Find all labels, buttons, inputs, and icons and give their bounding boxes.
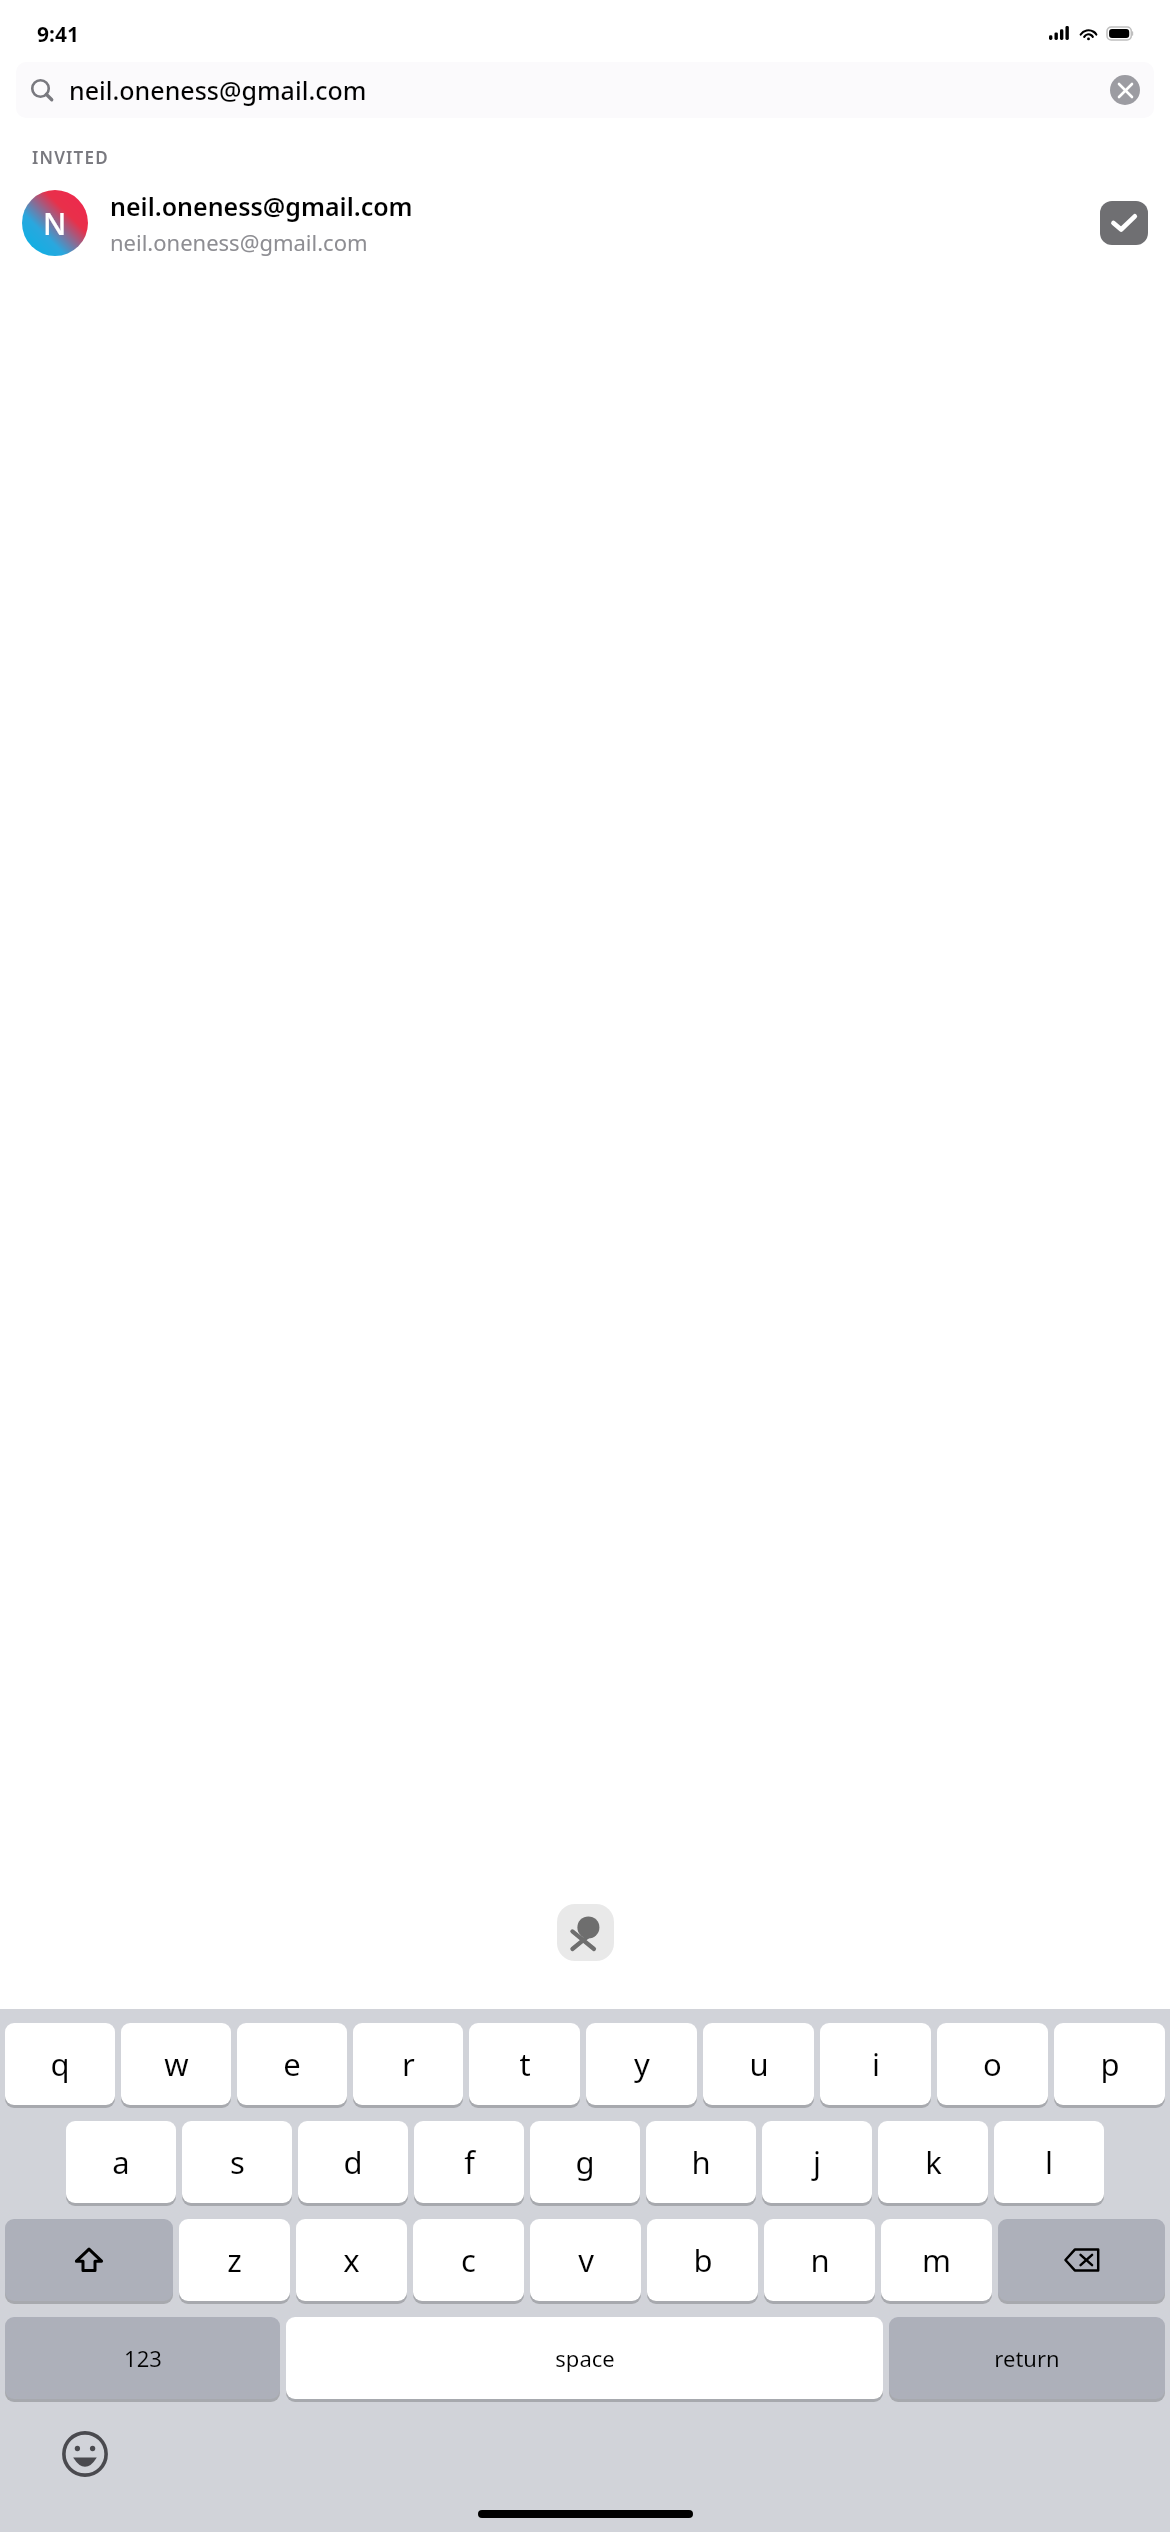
- button[interactable]: x: [296, 2219, 407, 2301]
- button[interactable]: space: [286, 2317, 883, 2399]
- button[interactable]: neil.oneness@gmail.com: [16, 62, 1154, 118]
- button[interactable]: a: [66, 2121, 176, 2203]
- staticText: j: [813, 2141, 821, 2183]
- button[interactable]: d: [298, 2121, 408, 2203]
- button[interactable]: 123: [5, 2317, 280, 2399]
- button[interactable]: z: [179, 2219, 290, 2301]
- staticText: m: [922, 2239, 951, 2281]
- staticText: n: [810, 2239, 830, 2281]
- button[interactable]: Clear text: [1110, 75, 1140, 105]
- staticText: y: [634, 2043, 650, 2085]
- staticText: v: [578, 2239, 594, 2281]
- staticText: g: [575, 2141, 595, 2183]
- staticText: x: [343, 2239, 360, 2281]
- button[interactable]: Backspace: [998, 2219, 1165, 2301]
- button[interactable]: r: [353, 2023, 463, 2105]
- staticText: INVITED: [32, 146, 109, 169]
- button[interactable]: p: [1054, 2023, 1165, 2105]
- staticText: 123: [124, 2343, 162, 2373]
- button[interactable]: f: [414, 2121, 524, 2203]
- staticText: c: [461, 2239, 476, 2281]
- button[interactable]: m: [881, 2219, 992, 2301]
- button[interactable]: v: [530, 2219, 641, 2301]
- staticText: N: [43, 203, 67, 244]
- button[interactable]: t: [469, 2023, 580, 2105]
- staticText: w: [164, 2043, 189, 2085]
- staticText: return: [994, 2343, 1060, 2373]
- button[interactable]: o: [937, 2023, 1048, 2105]
- button[interactable]: i: [820, 2023, 931, 2105]
- button[interactable]: w: [121, 2023, 231, 2105]
- staticText: l: [1045, 2141, 1053, 2183]
- button[interactable]: l: [994, 2121, 1104, 2203]
- staticText: h: [691, 2141, 711, 2183]
- button[interactable]: Selected: [1100, 201, 1148, 245]
- button[interactable]: n: [764, 2219, 875, 2301]
- staticText: p: [1100, 2043, 1120, 2085]
- staticText: neil.oneness@gmail.com: [110, 227, 368, 257]
- button[interactable]: y: [586, 2023, 697, 2105]
- staticText: r: [402, 2043, 415, 2085]
- staticText: 9:41: [37, 20, 79, 49]
- staticText: neil.oneness@gmail.com: [110, 189, 413, 223]
- button[interactable]: b: [647, 2219, 758, 2301]
- staticText: f: [464, 2141, 475, 2183]
- button[interactable]: Emoji keyboard: [58, 2427, 112, 2481]
- button[interactable]: k: [878, 2121, 988, 2203]
- button[interactable]: u: [703, 2023, 814, 2105]
- staticText: d: [343, 2141, 363, 2183]
- button[interactable]: e: [237, 2023, 347, 2105]
- staticText: a: [112, 2141, 130, 2183]
- staticText: q: [50, 2043, 70, 2085]
- staticText: t: [519, 2043, 531, 2085]
- staticText: u: [749, 2043, 769, 2085]
- staticText: s: [230, 2141, 245, 2183]
- button[interactable]: N: [0, 179, 1170, 267]
- button[interactable]: Shift: [5, 2219, 173, 2301]
- staticText: i: [872, 2043, 880, 2085]
- button[interactable]: return: [889, 2317, 1165, 2399]
- staticText: neil.oneness@gmail.com: [69, 73, 1110, 107]
- staticText: o: [983, 2043, 1002, 2085]
- staticText: e: [283, 2043, 301, 2085]
- button[interactable]: c: [413, 2219, 524, 2301]
- button[interactable]: g: [530, 2121, 640, 2203]
- staticText: b: [693, 2239, 713, 2281]
- button[interactable]: q: [5, 2023, 115, 2105]
- staticText: space: [555, 2343, 615, 2373]
- staticText: k: [925, 2141, 942, 2183]
- button[interactable]: s: [182, 2121, 292, 2203]
- button[interactable]: j: [762, 2121, 872, 2203]
- staticText: z: [227, 2239, 242, 2281]
- button[interactable]: h: [646, 2121, 756, 2203]
